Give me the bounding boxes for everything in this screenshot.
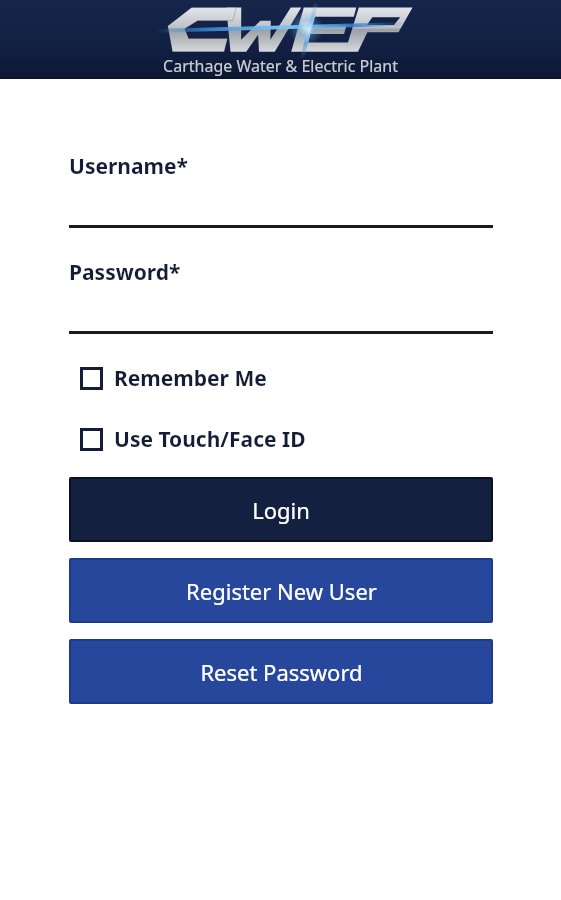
button[interactable]: Login (71, 479, 491, 540)
other: CWEP logo (156, 2, 406, 56)
staticText: Carthage Water & Electric Plant (163, 55, 398, 77)
staticText: Register New User (186, 576, 377, 606)
button[interactable]: Reset Password (71, 641, 491, 702)
button[interactable]: Register New User (71, 560, 491, 621)
button[interactable]: Remember Me (80, 364, 493, 393)
staticText: Login (252, 495, 310, 525)
staticText: Use Touch/Face ID (114, 425, 306, 454)
staticText: Username* (69, 152, 188, 181)
staticText: Reset Password (200, 657, 363, 687)
button[interactable]: Use Touch/Face ID (80, 425, 493, 454)
staticText: Remember Me (114, 364, 267, 393)
staticText: Password* (69, 258, 181, 287)
